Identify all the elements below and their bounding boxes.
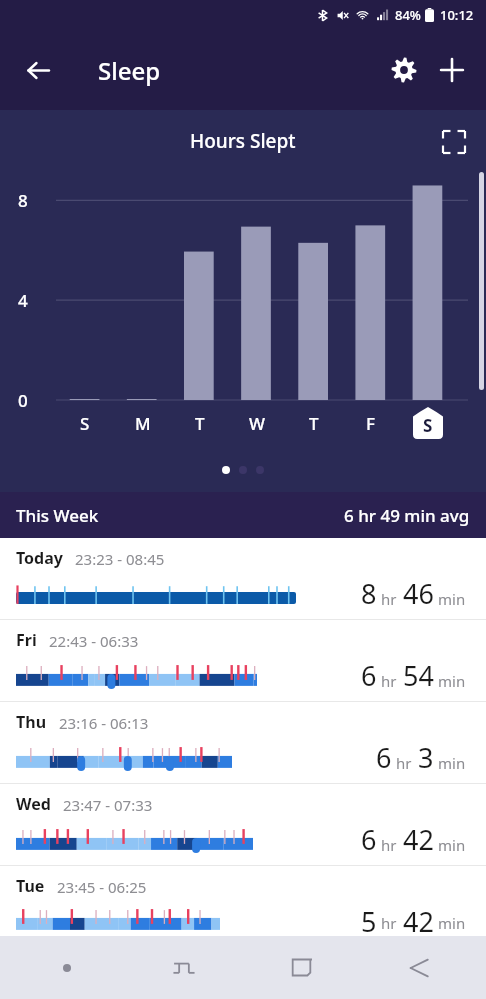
staticText: min	[438, 835, 466, 855]
staticText: Fri	[16, 629, 37, 651]
staticText: min	[438, 671, 466, 691]
staticText: Hours Slept	[190, 128, 296, 154]
button[interactable]: Recents	[125, 936, 242, 999]
staticText: 4	[18, 289, 28, 312]
button[interactable]: Wed	[0, 784, 486, 865]
staticText: 6	[361, 657, 377, 694]
staticText: 8	[18, 189, 28, 212]
button[interactable]: Fullscreen	[432, 120, 476, 164]
staticText: 6	[376, 739, 392, 776]
button[interactable]: Back	[360, 936, 478, 999]
staticText: 42	[403, 821, 434, 858]
staticText: hr	[381, 835, 397, 855]
staticText: Thu	[16, 711, 47, 733]
button[interactable]: Today	[0, 538, 486, 619]
button[interactable]: Tue	[0, 866, 486, 936]
staticText: S	[80, 412, 90, 435]
staticText: 10:12	[440, 6, 474, 24]
staticText: hr	[381, 913, 397, 933]
button[interactable]: Thu	[0, 702, 486, 783]
staticText: 23:23 - 08:45	[75, 549, 165, 569]
staticText: hr	[381, 671, 397, 691]
staticText: 3	[418, 739, 434, 776]
staticText: T	[309, 412, 319, 435]
staticText: hr	[396, 753, 412, 773]
staticText: 23:45 - 06:25	[57, 877, 147, 897]
staticText: 6 hr 49 min avg	[344, 504, 470, 527]
staticText: Today	[16, 547, 63, 569]
button[interactable]: Add	[428, 46, 476, 94]
staticText: min	[438, 753, 466, 773]
staticText: 8	[361, 575, 377, 612]
staticText: min	[438, 913, 466, 933]
staticText: 42	[403, 903, 434, 936]
staticText: Sleep	[98, 54, 161, 87]
staticText: 22:43 - 06:33	[49, 631, 139, 651]
staticText: This Week	[16, 504, 99, 527]
button[interactable]: Back	[14, 46, 62, 94]
staticText: W	[249, 412, 265, 435]
staticText: Tue	[16, 875, 45, 897]
staticText: 23:16 - 06:13	[59, 713, 149, 733]
button[interactable]: Menu	[8, 936, 125, 999]
staticText: T	[195, 412, 205, 435]
staticText: S	[423, 414, 433, 437]
staticText: 0	[18, 389, 28, 412]
staticText: Wed	[16, 793, 51, 815]
staticText: F	[366, 412, 375, 435]
staticText: 46	[403, 575, 434, 612]
staticText: 54	[403, 657, 434, 694]
staticText: hr	[381, 589, 397, 609]
button[interactable]: Fri	[0, 620, 486, 701]
staticText: M	[135, 412, 151, 435]
button[interactable]: Home	[242, 936, 360, 999]
button[interactable]: Settings	[380, 46, 428, 94]
staticText: min	[438, 589, 466, 609]
staticText: 23:47 - 07:33	[63, 795, 153, 815]
staticText: 84%	[395, 6, 421, 24]
staticText: 5	[361, 903, 377, 936]
staticText: 6	[361, 821, 377, 858]
